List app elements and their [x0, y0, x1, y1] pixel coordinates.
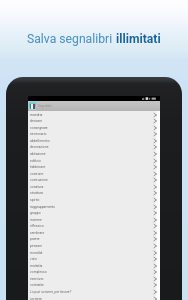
button[interactable]: abbellimento	[28, 137, 160, 144]
staticText: decorazione	[30, 145, 153, 149]
staticText: edificio	[30, 159, 153, 163]
button[interactable]: esercizio	[28, 275, 160, 282]
staticText: moralità	[30, 251, 153, 255]
button[interactable]: mandria	[28, 111, 160, 118]
staticText: consegnare	[30, 126, 153, 130]
staticText: mandria	[30, 113, 153, 117]
staticText: derivare	[30, 119, 153, 123]
button[interactable]: decorazione	[28, 144, 160, 150]
button[interactable]: insieme	[28, 216, 160, 223]
button[interactable]: derivare	[28, 118, 160, 124]
button[interactable]: costruzione	[28, 177, 160, 183]
button[interactable]: spirito	[28, 196, 160, 203]
staticText: vizio	[30, 257, 153, 261]
staticText: riflessivo	[30, 224, 153, 228]
staticText: complesso	[30, 270, 153, 274]
staticText: pensare	[30, 244, 153, 248]
staticText: gruppo	[30, 211, 153, 215]
button[interactable]: pensare	[28, 242, 160, 249]
staticText: contratto	[30, 283, 153, 287]
staticText: raggruppamento	[30, 205, 153, 209]
button[interactable]: vizio	[28, 256, 160, 262]
staticText: spirito	[30, 198, 153, 202]
button[interactable]: necessario	[28, 131, 160, 137]
staticText: costruzione	[30, 178, 153, 182]
button[interactable]: complesso	[28, 269, 160, 275]
staticText: esercizio	[30, 277, 153, 281]
button[interactable]: edificio	[28, 157, 160, 164]
staticText: Salva segnalibri	[27, 32, 116, 46]
staticText: illimitati	[116, 32, 161, 46]
staticText: necessario	[30, 132, 153, 136]
button[interactable]: abitazione	[28, 150, 160, 157]
staticText: sembrare	[30, 231, 153, 235]
button[interactable]: moralità	[28, 249, 160, 256]
button[interactable]: gruppo	[28, 210, 160, 216]
button[interactable]: Dizionario italiano	[28, 101, 160, 111]
button[interactable]: struttura	[28, 190, 160, 196]
button[interactable]: riflessivo	[28, 223, 160, 229]
button[interactable]: fabbricare	[28, 164, 160, 170]
staticText: Lo può scrivere, per favore?	[30, 290, 153, 294]
staticText: abbellimento	[30, 139, 153, 143]
other: Dizionario italiano	[29, 102, 36, 110]
staticText: Segnalibri	[38, 104, 52, 108]
button[interactable]: contratto	[28, 282, 160, 288]
other: Status icons	[142, 97, 157, 100]
staticText: malattia	[30, 264, 153, 268]
button[interactable]: consegnare	[28, 124, 160, 131]
staticText: fabbricare	[30, 165, 153, 169]
button[interactable]: malattia	[28, 262, 160, 269]
staticText: scrivere	[30, 297, 153, 300]
staticText: conatura	[30, 185, 153, 189]
button[interactable]: costruire	[28, 170, 160, 177]
staticText: struttura	[30, 191, 153, 195]
button[interactable]: parere	[28, 236, 160, 242]
staticText: abitazione	[30, 152, 153, 156]
button[interactable]: scrivere	[28, 295, 160, 300]
button[interactable]: raggruppamento	[28, 203, 160, 210]
button[interactable]: conatura	[28, 183, 160, 190]
button[interactable]: Lo può scrivere, per favore?	[28, 288, 160, 295]
staticText: costruire	[30, 172, 153, 176]
staticText: insieme	[30, 218, 153, 222]
button[interactable]: sembrare	[28, 229, 160, 236]
staticText: parere	[30, 237, 153, 241]
